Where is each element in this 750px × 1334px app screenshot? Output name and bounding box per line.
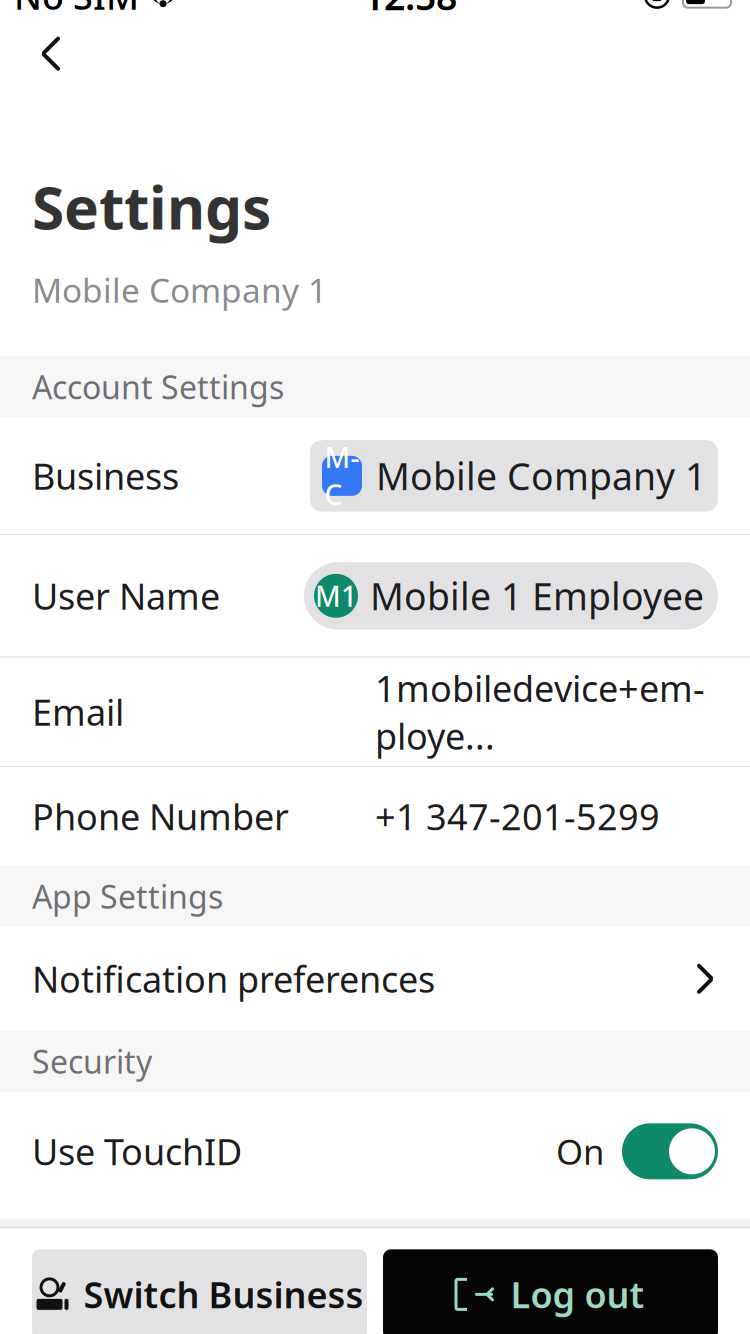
staticText: Security	[32, 1040, 152, 1083]
staticText: M1	[315, 577, 357, 614]
button[interactable]: Log out	[383, 1249, 718, 1334]
staticText: Log out	[510, 1270, 644, 1318]
button[interactable]: Back	[16, 19, 86, 89]
staticText: Mobile Company 1	[376, 451, 706, 501]
staticText: Settings	[32, 168, 271, 246]
staticText: On	[556, 1128, 604, 1174]
staticText: App Settings	[32, 875, 223, 918]
staticText: Account Settings	[32, 366, 284, 408]
staticText: Use TouchID	[32, 1127, 242, 1175]
staticText: Mobile Company 1	[32, 268, 327, 312]
button[interactable]: Notification preferences	[0, 927, 750, 1030]
staticText: Notification preferences	[32, 955, 435, 1003]
staticText: Email	[32, 688, 124, 736]
button[interactable]: Switch Business	[32, 1249, 367, 1334]
staticText: MC	[324, 439, 359, 513]
staticText: User Name	[32, 572, 220, 620]
staticText: No SIM	[14, 0, 139, 20]
staticText: Business	[32, 452, 179, 500]
staticText: Phone Number	[32, 792, 289, 840]
staticText: +1 347-201-5299	[375, 792, 660, 840]
staticText: 12:58	[363, 0, 457, 20]
button[interactable]: Use TouchID toggle	[622, 1123, 718, 1179]
staticText: Mobile 1 Employee	[370, 571, 704, 621]
staticText: 1mobiledevice+employe...	[375, 664, 705, 760]
staticText: Switch Business	[83, 1270, 363, 1318]
